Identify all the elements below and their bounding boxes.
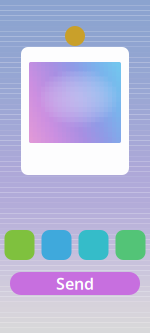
button[interactable]: Reaction [4, 230, 34, 260]
button[interactable]: Reaction [41, 230, 71, 260]
staticText: Send [56, 273, 94, 294]
button[interactable]: Reaction [78, 230, 108, 260]
button[interactable]: Send [10, 272, 140, 295]
button[interactable]: Reaction [115, 230, 145, 260]
